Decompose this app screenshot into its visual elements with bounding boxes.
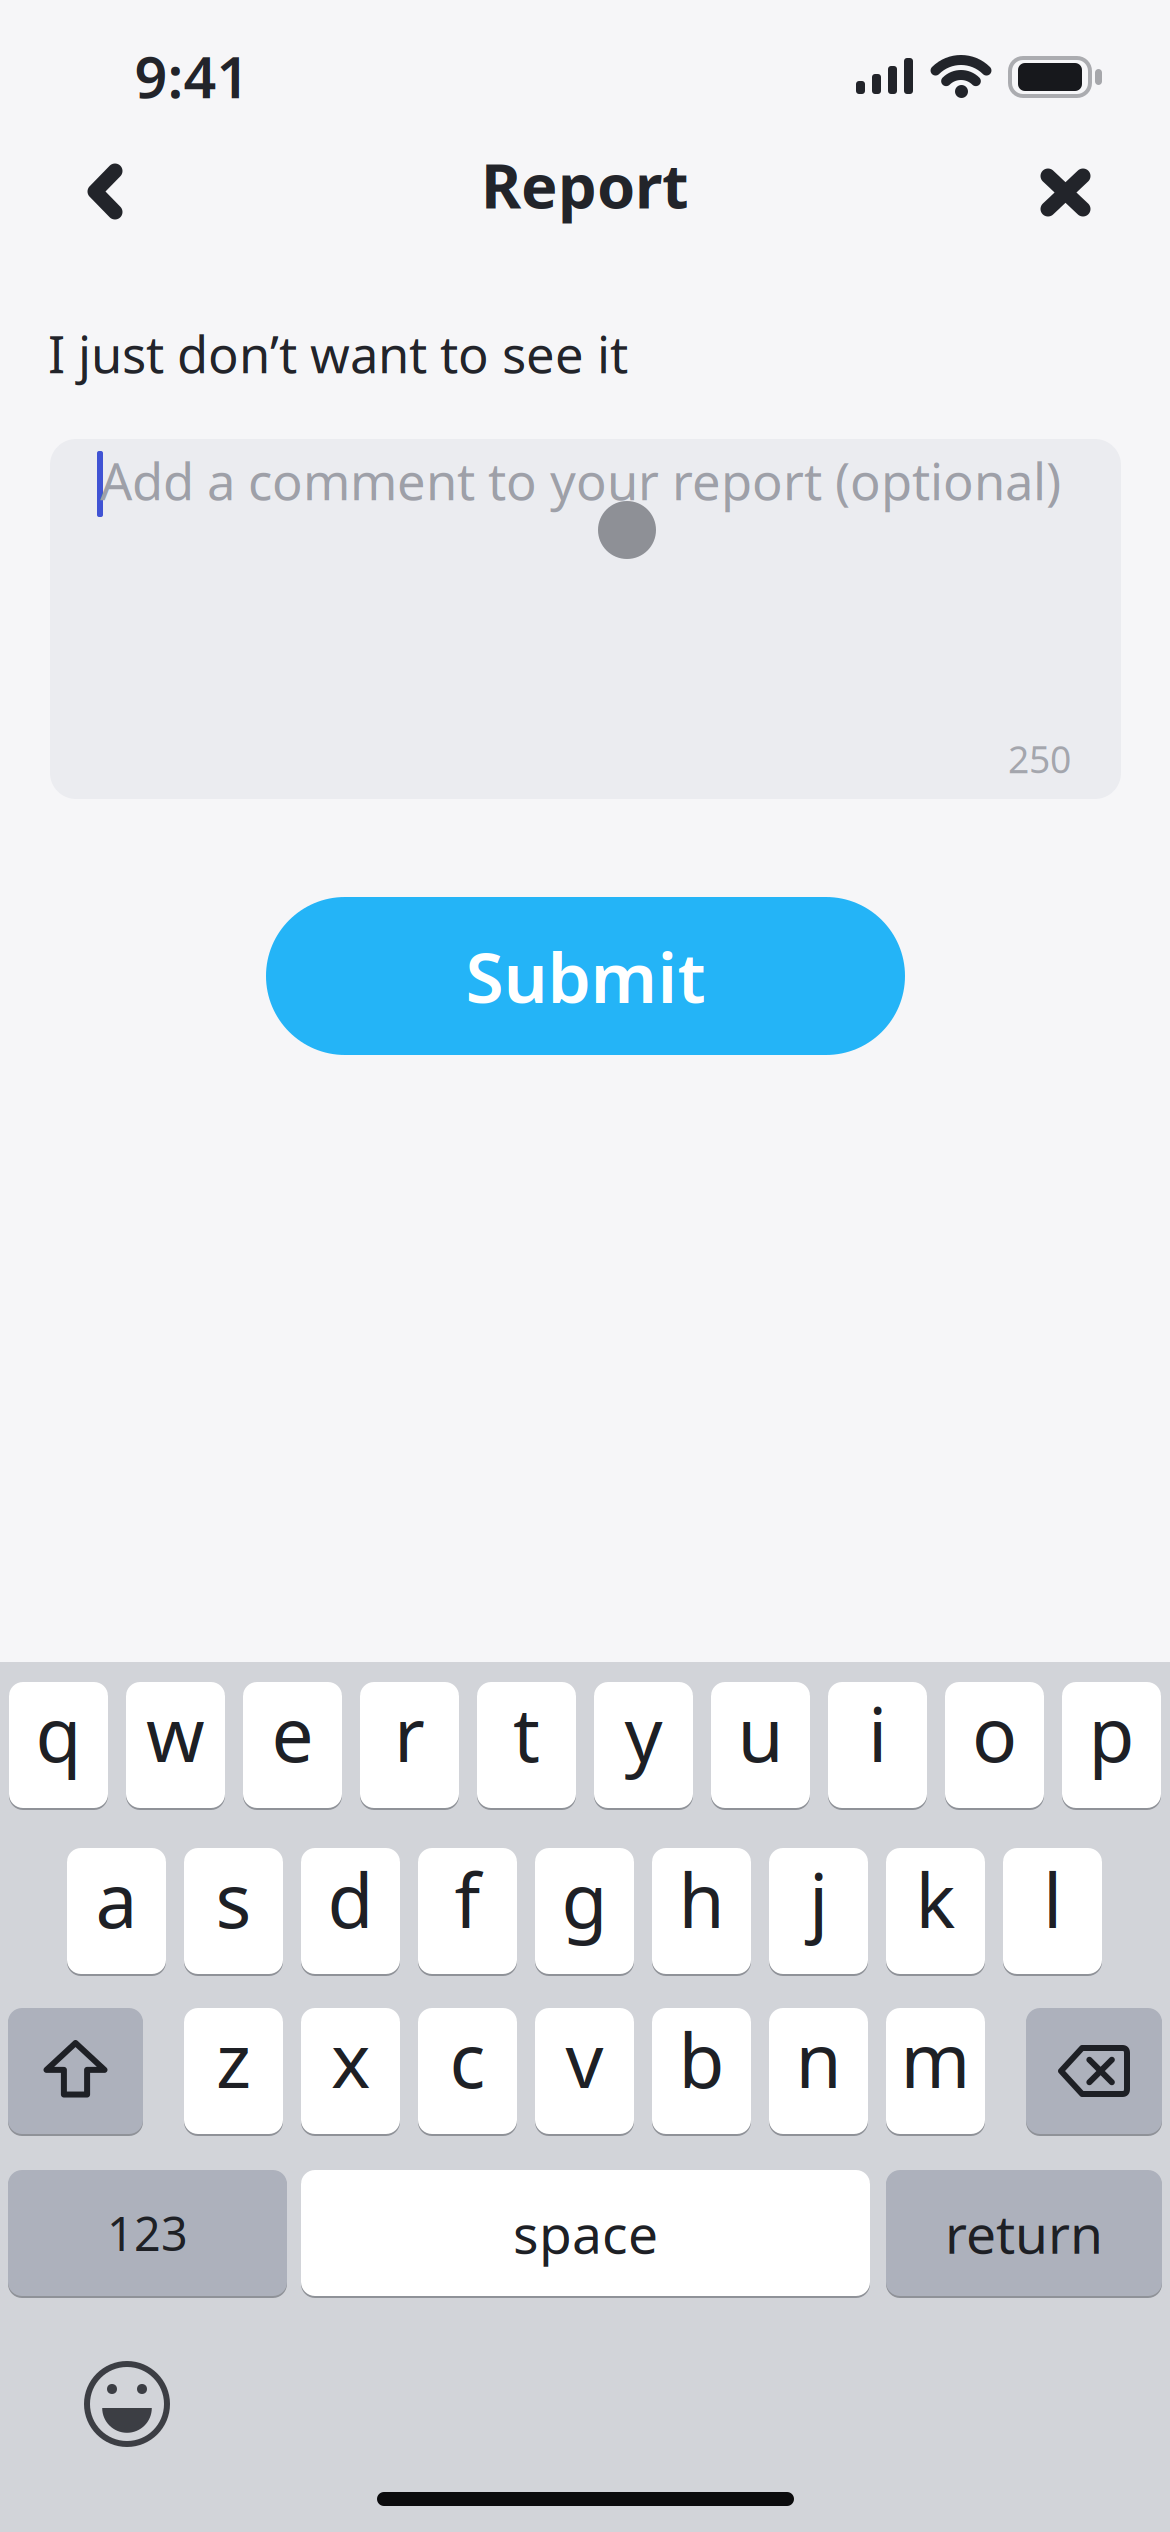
button[interactable]: x [301, 2008, 400, 2137]
button[interactable]: z [184, 2008, 283, 2137]
button[interactable]: c [418, 2008, 517, 2137]
staticText: 123 [107, 2202, 188, 2264]
button[interactable]: k [886, 1848, 985, 1977]
staticText: n [795, 2009, 841, 2109]
button[interactable]: r [360, 1682, 459, 1811]
button[interactable]: h [652, 1848, 751, 1977]
staticText: g [561, 1849, 607, 1949]
button[interactable]: space [301, 2170, 870, 2299]
staticText: return [945, 2198, 1103, 2268]
staticText: m [900, 2009, 970, 2109]
staticText: b [678, 2009, 724, 2109]
staticText: 250 [1008, 734, 1071, 784]
staticText: j [809, 1849, 828, 1949]
staticText: 9:41 [134, 38, 249, 114]
staticText: I just don’t want to see it [48, 320, 628, 387]
staticText: z [216, 2009, 251, 2109]
button[interactable]: t [477, 1682, 576, 1811]
staticText: e [271, 1683, 313, 1783]
staticText: space [513, 2198, 658, 2268]
staticText: q [35, 1683, 81, 1783]
button[interactable]: m [886, 2008, 985, 2137]
button[interactable]: Close [1038, 166, 1093, 219]
button[interactable]: return [886, 2170, 1162, 2299]
button[interactable]: Back [81, 163, 129, 220]
staticText: h [678, 1849, 724, 1949]
button[interactable]: g [535, 1848, 634, 1977]
staticText: t [513, 1683, 540, 1783]
button[interactable]: a [67, 1848, 166, 1977]
staticText: u [737, 1683, 783, 1783]
staticText: w [146, 1683, 205, 1783]
button[interactable]: d [301, 1848, 400, 1977]
staticText: o [972, 1683, 1017, 1783]
button[interactable]: i [828, 1682, 927, 1811]
staticText: f [454, 1849, 480, 1949]
button[interactable]: Emoji [87, 2364, 167, 2444]
staticText: r [394, 1683, 425, 1783]
staticText: p [1088, 1683, 1134, 1783]
button[interactable]: q [9, 1682, 108, 1811]
button[interactable]: l [1003, 1848, 1102, 1977]
button[interactable]: Add a comment to your report (optional) [50, 439, 1121, 799]
button[interactable]: s [184, 1848, 283, 1977]
staticText: l [1043, 1849, 1062, 1949]
button[interactable]: f [418, 1848, 517, 1977]
staticText: Report [481, 144, 689, 225]
button[interactable]: u [711, 1682, 810, 1811]
staticText: a [95, 1849, 137, 1949]
button[interactable]: y [594, 1682, 693, 1811]
button[interactable]: Submit [266, 897, 905, 1055]
staticText: x [331, 2009, 370, 2109]
staticText: k [915, 1849, 955, 1949]
staticText: y [624, 1683, 662, 1783]
staticText: c [449, 2009, 485, 2109]
button[interactable]: n [769, 2008, 868, 2137]
staticText: d [327, 1849, 373, 1949]
button[interactable]: 123 [8, 2170, 287, 2299]
staticText: s [215, 1849, 251, 1949]
staticText: Submit [465, 930, 705, 1022]
button[interactable]: w [126, 1682, 225, 1811]
button[interactable]: v [535, 2008, 634, 2137]
button[interactable]: j [769, 1848, 868, 1977]
staticText: v [565, 2009, 603, 2109]
button[interactable]: Shift [8, 2008, 143, 2137]
staticText: i [868, 1683, 887, 1783]
button[interactable]: b [652, 2008, 751, 2137]
button[interactable]: p [1062, 1682, 1161, 1811]
staticText: Add a comment to your report (optional) [100, 447, 1061, 514]
button[interactable]: o [945, 1682, 1044, 1811]
button[interactable]: e [243, 1682, 342, 1811]
button[interactable]: Delete [1026, 2008, 1162, 2137]
